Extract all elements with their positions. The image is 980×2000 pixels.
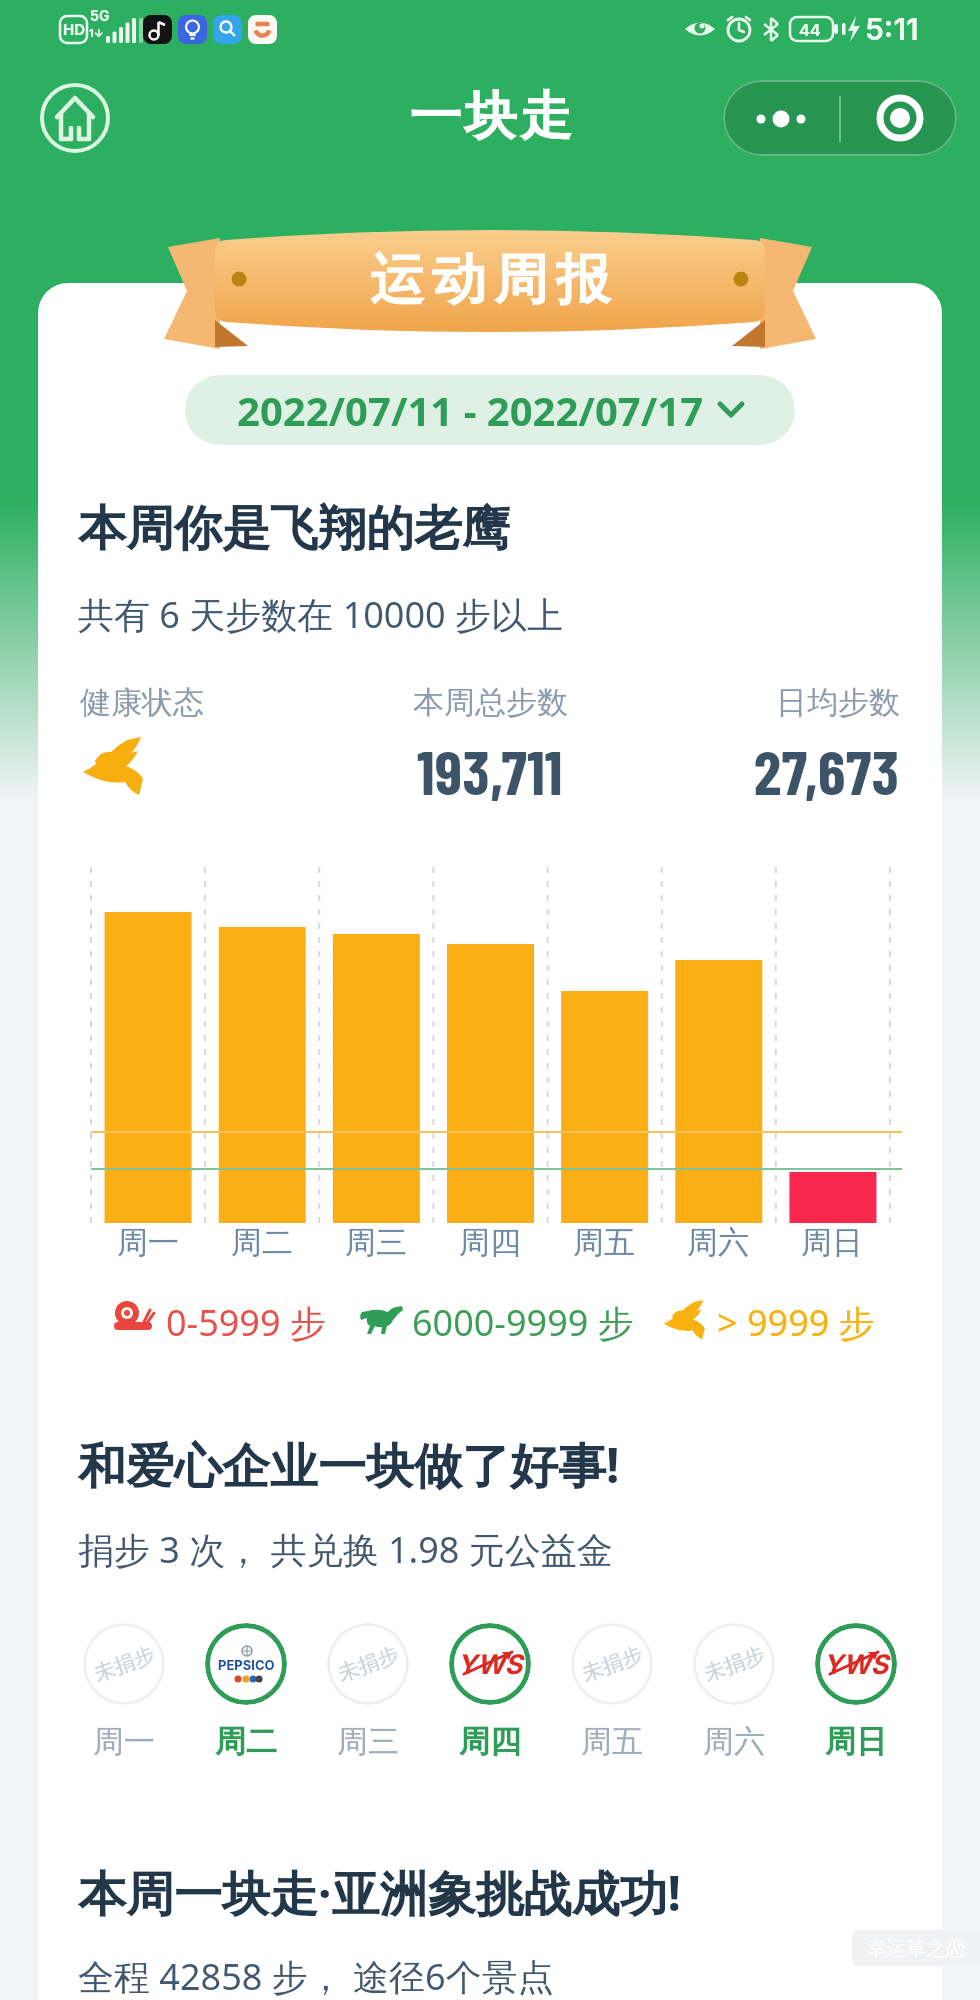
staticText: 周三: [337, 1722, 399, 1761]
staticText: 日均步数: [776, 683, 900, 722]
staticText: 未捐步: [700, 1641, 769, 1687]
staticText: 全程 42858 步， 途径6个景点: [78, 1952, 554, 2000]
staticText: 未捐步: [578, 1641, 647, 1687]
staticText: 周六: [703, 1722, 765, 1761]
staticText: 本周你是飞翔的老鹰: [78, 499, 510, 559]
staticText: PEPSICO: [218, 1657, 275, 1673]
staticText: 周一: [93, 1722, 155, 1761]
button[interactable]: 未捐步: [571, 1623, 653, 1705]
staticText: 6000-9999 步: [412, 1298, 634, 1347]
staticText: 周二: [231, 1223, 293, 1262]
staticText: 未捐步: [334, 1641, 403, 1687]
staticText: 44: [799, 20, 821, 39]
button[interactable]: [723, 80, 957, 156]
staticText: 周五: [573, 1223, 635, 1262]
staticText: 和爱心企业一块做了好事!: [78, 1432, 620, 1498]
staticText: 周五: [581, 1722, 643, 1761]
staticText: 周四: [459, 1722, 521, 1761]
button[interactable]: [38, 81, 112, 155]
staticText: 捐步 3 次， 共兑换 1.98 元公益金: [78, 1525, 613, 1574]
staticText: YWS: [457, 1648, 523, 1681]
staticText: 周日: [801, 1223, 863, 1262]
button[interactable]: 未捐步: [83, 1623, 165, 1705]
staticText: 193,711: [417, 733, 563, 807]
button[interactable]: YWS: [449, 1623, 531, 1705]
staticText: 本周总步数: [413, 683, 568, 722]
staticText: 运动周报: [366, 246, 614, 314]
staticText: HD: [63, 20, 86, 38]
button[interactable]: YWS: [815, 1623, 897, 1705]
staticText: 未捐步: [90, 1641, 159, 1687]
staticText: YWS: [823, 1648, 889, 1681]
staticText: 周三: [345, 1223, 407, 1262]
button[interactable]: 未捐步: [327, 1623, 409, 1705]
staticText: 共有 6 天步数在 10000 步以上: [78, 590, 563, 639]
staticText: 周日: [825, 1722, 887, 1761]
staticText: 健康状态: [80, 683, 204, 722]
staticText: 本周一块走·亚洲象挑战成功!: [78, 1860, 682, 1926]
staticText: 一块走: [408, 84, 573, 150]
staticText: 5G: [90, 7, 110, 24]
staticText: > 9999 步: [717, 1298, 875, 1347]
button[interactable]: 2022/07/11 - 2022/07/17: [185, 375, 795, 445]
staticText: 幸运草之恋: [866, 1936, 966, 1961]
staticText: 1↓: [89, 26, 104, 39]
button[interactable]: 未捐步: [693, 1623, 775, 1705]
staticText: 27,673: [754, 733, 900, 807]
staticText: 0-5999 步: [166, 1298, 326, 1347]
staticText: 周六: [687, 1223, 749, 1262]
staticText: 周一: [117, 1223, 179, 1262]
staticText: 周四: [459, 1223, 521, 1262]
staticText: 周二: [215, 1722, 277, 1761]
staticText: 2022/07/11 - 2022/07/17: [237, 383, 704, 437]
staticText: 5:11: [865, 11, 919, 47]
button[interactable]: PEPSICO: [205, 1623, 287, 1705]
